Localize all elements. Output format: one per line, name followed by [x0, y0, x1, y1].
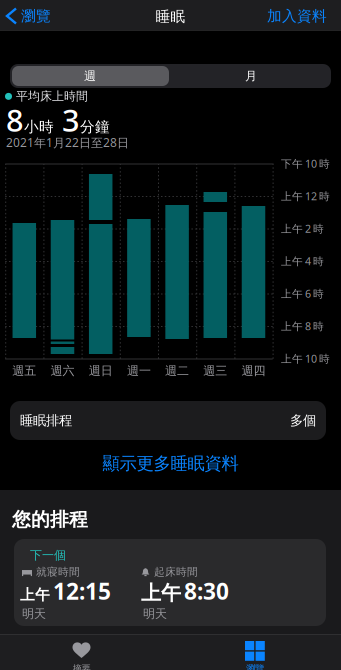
staticText: 顯示更多睡眠資料 [102, 453, 238, 474]
staticText: 週二 [165, 363, 189, 378]
staticText: 上午 12 時 [281, 189, 330, 203]
button[interactable]: 加入資料 [267, 1, 327, 31]
staticText: 3 [54, 99, 80, 140]
staticText: 下午 10 時 [281, 156, 330, 171]
staticText: 8:30 [184, 576, 229, 606]
staticText: 睡眠排程 [20, 412, 72, 429]
button[interactable]: 週 [10, 64, 170, 88]
staticText: 就寢時間 [36, 565, 80, 579]
staticText: 週三 [203, 363, 227, 378]
staticText: 上午 4 時 [281, 254, 324, 268]
staticText: 摘要 [72, 663, 90, 670]
staticText: 2021年1月22日至28日 [6, 134, 129, 150]
staticText: 上午 8 時 [281, 319, 324, 333]
button[interactable]: 瀏覽 [7, 1, 51, 31]
staticText: 週 [84, 69, 96, 83]
staticText: 週日 [89, 363, 113, 378]
staticText: 瀏覽 [246, 663, 264, 670]
staticText: 12:15 [53, 576, 111, 606]
staticText: 週五 [12, 363, 36, 378]
staticText: 明天 [143, 606, 167, 621]
staticText: 週四 [241, 363, 265, 378]
staticText: 分鐘 [80, 118, 110, 136]
staticText: 睡眠 [155, 7, 185, 25]
button[interactable]: 睡眠排程 [10, 401, 326, 440]
staticText: 平均床上時間 [16, 89, 88, 104]
staticText: 小時 [24, 118, 54, 136]
staticText: 加入資料 [267, 7, 327, 25]
staticText: 您的排程 [12, 508, 88, 531]
staticText: 週六 [50, 363, 74, 378]
staticText: 瀏覽 [21, 7, 51, 25]
staticText: 上午 2 時 [281, 221, 324, 236]
button[interactable] [12, 66, 169, 86]
button[interactable]: 摘要 [41, 642, 121, 670]
staticText: 上午 6 時 [281, 286, 324, 301]
button[interactable]: 顯示更多睡眠資料 [0, 453, 341, 473]
button[interactable]: 下一個 [14, 539, 326, 626]
button[interactable]: 瀏覽 [215, 641, 295, 670]
staticText: 起床時間 [154, 565, 198, 579]
staticText: 月 [245, 69, 257, 83]
staticText: 上午 10 時 [281, 351, 330, 366]
staticText: 上午 [20, 586, 50, 604]
staticText: 下一個 [30, 548, 66, 563]
staticText: 週一 [127, 363, 151, 378]
staticText: 多個 [290, 412, 316, 429]
staticText: 8 [6, 99, 24, 140]
staticText: 明天 [22, 606, 46, 621]
button[interactable]: 月 [171, 64, 331, 88]
staticText: 上午 [141, 581, 181, 605]
